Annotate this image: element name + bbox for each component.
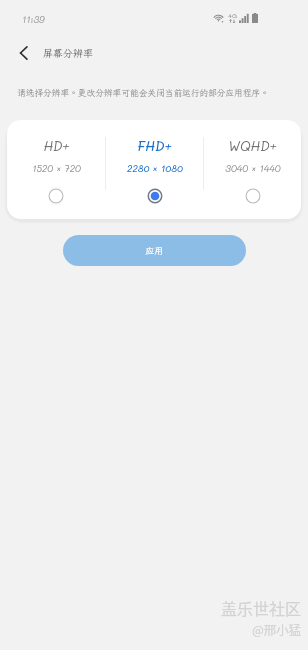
staticText: FHD+ (137, 137, 172, 155)
staticText: @邢小猛 (252, 620, 302, 638)
staticText: HD+ (43, 137, 70, 155)
button[interactable]: FHD+ (106, 120, 203, 219)
staticText: WQHD+ (228, 137, 277, 155)
staticText: 1520 × 720 (32, 162, 81, 174)
staticText: 3040 × 1440 (225, 162, 281, 174)
staticText: 盖乐世社区 (221, 596, 302, 619)
button[interactable]: Back (8, 38, 38, 68)
staticText: 4G (228, 11, 237, 20)
staticText: 11:39 (22, 13, 45, 25)
button[interactable]: WQHD+ (204, 120, 301, 219)
staticText: 请选择分辨率。更改分辨率可能会关闭当前运行的部分应用程序。 (17, 87, 269, 98)
button[interactable]: HD+ (7, 120, 105, 219)
button[interactable]: 应用 (63, 235, 246, 266)
staticText: 屏幕分辨率 (43, 47, 93, 60)
staticText: 应用 (145, 245, 164, 257)
staticText: 2280 × 1080 (127, 162, 183, 174)
